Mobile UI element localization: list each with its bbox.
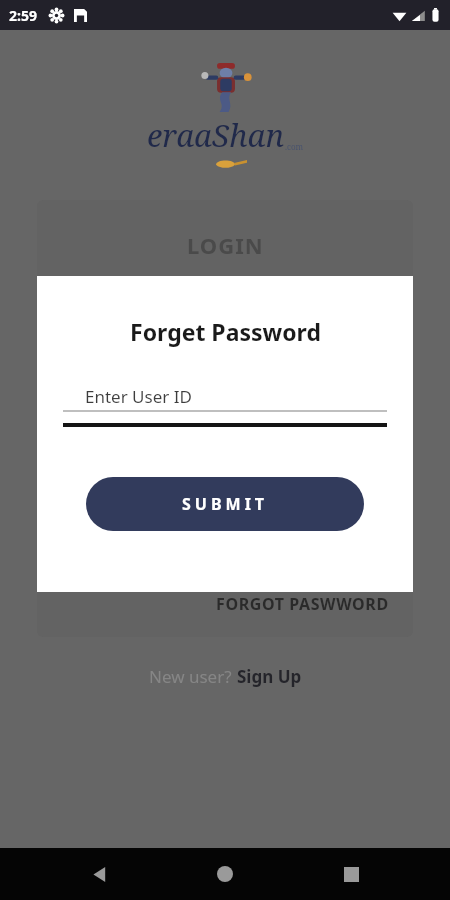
button[interactable]: Back bbox=[72, 848, 126, 900]
button[interactable]: FORGOT PASWWORD bbox=[37, 593, 413, 637]
staticText: Enter User ID bbox=[85, 385, 192, 408]
staticText: Sign Up bbox=[237, 665, 302, 688]
staticText: Forget Password bbox=[130, 316, 321, 347]
button[interactable]: Home bbox=[198, 848, 252, 900]
staticText: SUBMIT bbox=[182, 493, 269, 515]
button[interactable]: Sign Up bbox=[237, 665, 302, 688]
staticText: eraaShan bbox=[147, 114, 285, 156]
staticText: 2:59 bbox=[9, 6, 37, 25]
staticText: New user? bbox=[149, 665, 237, 688]
button[interactable]: SUBMIT bbox=[86, 477, 364, 531]
staticText: .com bbox=[285, 141, 304, 152]
button[interactable]: Enter User ID bbox=[63, 383, 387, 435]
staticText: FORGOT PASWWORD bbox=[216, 593, 389, 615]
button[interactable]: Recent apps bbox=[324, 848, 378, 900]
staticText: LOGIN bbox=[187, 230, 264, 260]
